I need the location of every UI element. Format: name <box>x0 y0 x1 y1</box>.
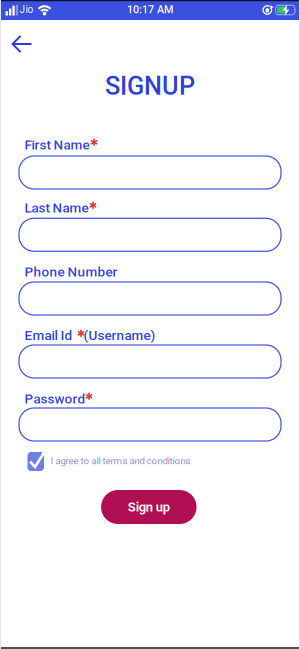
staticText: 10:17 AM <box>127 3 173 16</box>
staticText: Last Name <box>24 200 88 216</box>
button[interactable]: Phone Number <box>19 282 281 315</box>
button[interactable]: Password <box>19 408 281 441</box>
button[interactable]: First Name <box>19 156 281 189</box>
staticText: (Username) <box>83 328 155 343</box>
button[interactable]: Back <box>0 26 44 62</box>
staticText: Email Id <box>24 328 72 343</box>
button[interactable]: Last Name <box>19 218 281 251</box>
staticText: Jio <box>19 4 33 15</box>
button[interactable]: I agree to all terms and conditions <box>29 449 190 473</box>
staticText: SIGNUP <box>105 71 195 101</box>
staticText: I agree to all terms and conditions <box>50 455 190 467</box>
button[interactable]: Sign up <box>101 490 197 524</box>
staticText: Sign up <box>128 499 170 515</box>
staticText: First Name <box>24 137 89 153</box>
button[interactable]: Email Id <box>19 345 281 378</box>
staticText: Phone Number <box>24 264 117 280</box>
staticText: Password <box>24 391 85 407</box>
